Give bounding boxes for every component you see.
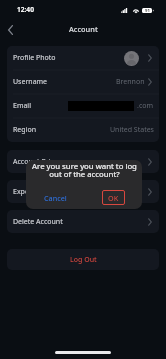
staticText: Log Out bbox=[70, 255, 97, 265]
staticText: .com bbox=[137, 101, 154, 111]
staticText: Export Data bbox=[13, 187, 52, 197]
staticText: Account Privacy bbox=[13, 157, 65, 167]
button[interactable]: Export Data bbox=[7, 180, 159, 203]
button[interactable]: Account Privacy bbox=[7, 150, 159, 173]
staticText: Region bbox=[13, 125, 36, 135]
button[interactable]: Profile Photo bbox=[7, 46, 159, 70]
staticText: 91 bbox=[145, 8, 150, 13]
staticText: Account bbox=[69, 24, 98, 34]
button[interactable]: Email bbox=[7, 94, 159, 118]
button[interactable]: Back bbox=[0, 19, 20, 38]
staticText: Profile Photo bbox=[13, 53, 56, 63]
staticText: OK bbox=[108, 193, 119, 203]
staticText: United States bbox=[110, 125, 154, 135]
staticText: Email bbox=[13, 101, 31, 111]
staticText: Username bbox=[13, 77, 48, 87]
button[interactable]: Region bbox=[7, 118, 159, 142]
staticText: Are you sure you want to log out of the … bbox=[32, 161, 137, 179]
button[interactable]: Log Out bbox=[7, 249, 159, 270]
staticText: 12:40 bbox=[17, 5, 34, 14]
button[interactable]: Cancel bbox=[26, 189, 84, 206]
staticText: Cancel bbox=[44, 193, 67, 203]
staticText: Delete Account bbox=[13, 217, 63, 227]
button[interactable]: OK bbox=[102, 190, 125, 205]
staticText: Brennon bbox=[116, 77, 145, 87]
button[interactable]: Username bbox=[7, 70, 159, 94]
button[interactable]: Delete Account bbox=[7, 210, 159, 233]
